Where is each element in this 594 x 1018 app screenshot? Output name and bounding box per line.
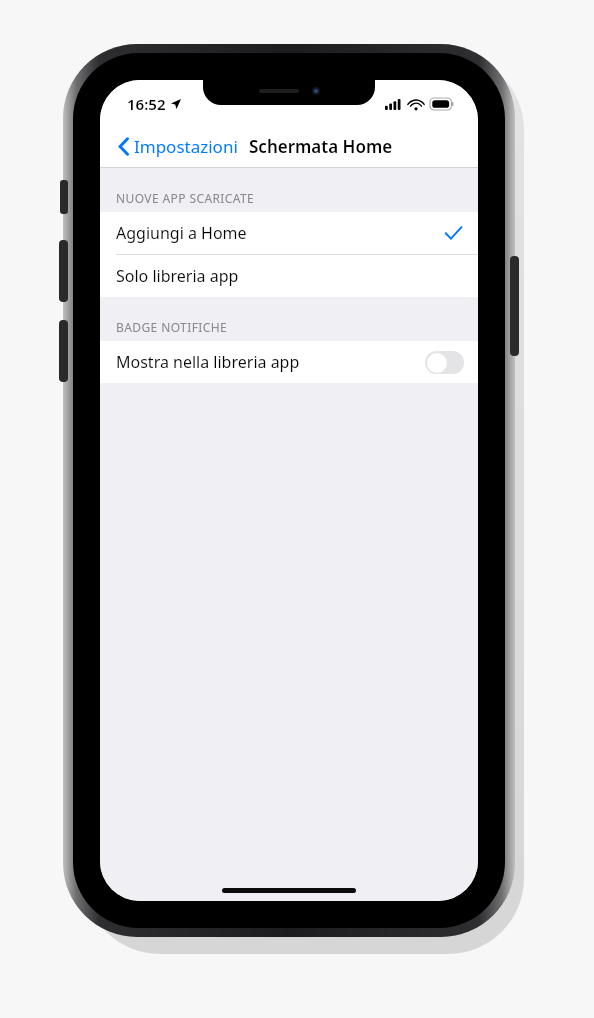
other: Volume down xyxy=(59,320,68,382)
staticText: Aggiungi a Home xyxy=(116,222,247,244)
other: Ringer switch xyxy=(60,180,68,214)
button[interactable]: Solo libreria app xyxy=(100,255,478,297)
button[interactable]: Aggiungi a Home xyxy=(100,212,478,254)
staticText: Solo libreria app xyxy=(116,265,239,287)
button[interactable]: Mostra nella libreria app xyxy=(100,341,478,383)
staticText: NUOVE APP SCARICATE xyxy=(116,190,255,206)
staticText: 16:52 xyxy=(127,94,166,114)
other: Side button xyxy=(510,256,519,356)
button[interactable]: Impostazioni xyxy=(114,131,242,162)
staticText: Schermata Home xyxy=(249,135,393,158)
staticText: Impostazioni xyxy=(134,135,238,158)
button[interactable]: Mostra nella libreria app toggle xyxy=(425,351,464,374)
staticText: BADGE NOTIFICHE xyxy=(116,319,228,335)
other: Volume up xyxy=(59,240,68,302)
staticText: Mostra nella libreria app xyxy=(116,351,300,373)
